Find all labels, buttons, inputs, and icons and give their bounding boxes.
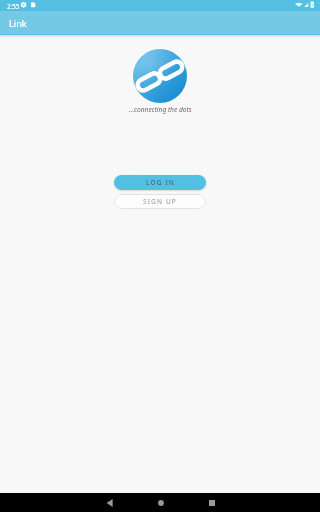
button[interactable]: LOG IN	[114, 175, 206, 190]
staticText: 2:55	[7, 2, 20, 10]
button[interactable]: Link	[0, 11, 320, 35]
button[interactable]: Recent apps	[186, 493, 237, 512]
staticText: SIGN UP	[143, 197, 177, 206]
staticText: ...connecting the dots	[129, 105, 192, 114]
staticText: LOG IN	[146, 178, 175, 187]
staticText: Link	[9, 17, 27, 30]
button[interactable]: Back	[84, 493, 135, 512]
button[interactable]: SIGN UP	[114, 194, 206, 209]
button[interactable]: Home	[135, 493, 186, 512]
